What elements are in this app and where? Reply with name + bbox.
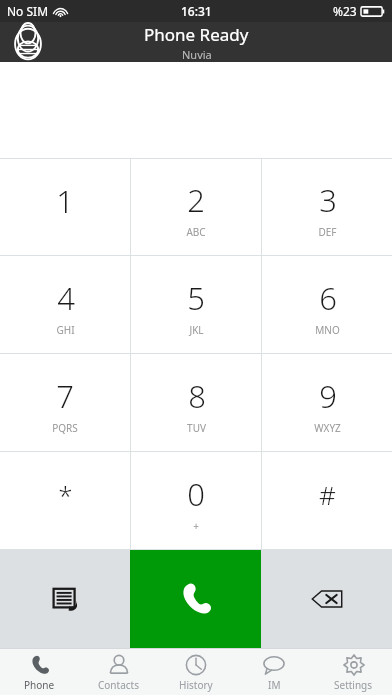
staticText: Phone Ready [144, 23, 249, 46]
staticText: GHI [56, 323, 75, 337]
staticText: %23 [333, 3, 357, 19]
staticText: 8 [188, 375, 206, 417]
staticText: MNO [315, 323, 340, 337]
staticText: No SIM [7, 3, 49, 19]
button[interactable]: 4 [0, 256, 130, 353]
button[interactable]: 5 [131, 256, 261, 353]
staticText: Phone [24, 678, 55, 692]
button[interactable]: IM [235, 649, 313, 695]
button[interactable]: * [0, 452, 130, 549]
staticText: + [193, 519, 199, 533]
staticText: 5 [187, 277, 205, 319]
button[interactable]: 8 [131, 354, 261, 451]
staticText: ABC [186, 225, 206, 239]
staticText: IM [268, 678, 281, 692]
button[interactable]: Backspace [261, 550, 392, 648]
button[interactable]: # [262, 452, 392, 549]
staticText: PQRS [52, 421, 78, 435]
staticText: 0 [187, 473, 205, 515]
button[interactable]: 7 [0, 354, 130, 451]
button[interactable]: Contacts [79, 649, 157, 695]
button[interactable]: History [157, 649, 235, 695]
button[interactable]: 0 [131, 452, 261, 549]
button[interactable]: Messages [0, 550, 130, 648]
staticText: WXYZ [314, 421, 341, 435]
staticText: DEF [318, 225, 337, 239]
staticText: 16:31 [181, 3, 212, 19]
staticText: 3 [319, 179, 337, 221]
staticText: History [179, 678, 213, 692]
staticText: Settings [334, 678, 373, 692]
staticText: 4 [57, 277, 75, 319]
staticText: 9 [319, 375, 337, 417]
button[interactable]: Call [130, 550, 261, 648]
button[interactable]: Phone [0, 649, 78, 695]
button[interactable]: 2 [131, 159, 261, 255]
button[interactable]: 6 [262, 256, 392, 353]
button[interactable]: 9 [262, 354, 392, 451]
staticText: * [58, 477, 73, 512]
staticText: 7 [56, 375, 74, 417]
button[interactable]: Settings [314, 649, 392, 695]
button[interactable]: 3 [262, 159, 392, 255]
button[interactable]: 1 [0, 159, 130, 255]
staticText: Contacts [98, 678, 139, 692]
staticText: 1 [56, 180, 74, 222]
staticText: Nuvia [182, 47, 212, 62]
staticText: JKL [189, 323, 204, 337]
staticText: TUV [187, 421, 206, 435]
staticText: 6 [319, 277, 337, 319]
staticText: # [319, 477, 336, 512]
staticText: 2 [187, 179, 205, 221]
